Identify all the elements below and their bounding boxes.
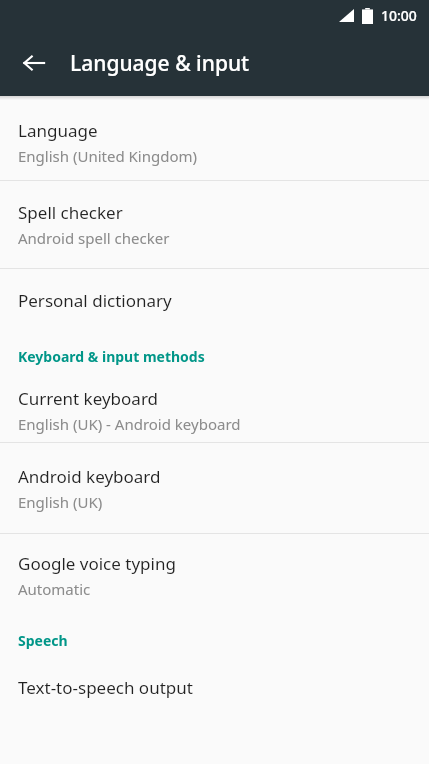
staticText: 10:00 [381,6,417,25]
staticText: Language [18,119,98,142]
button[interactable]: Back [10,39,58,87]
staticText: Text-to-speech output [18,676,193,699]
staticText: Android spell checker [18,228,170,248]
staticText: English (UK) - Android keyboard [18,414,241,434]
button[interactable]: Spell checker [0,181,429,268]
button[interactable]: Google voice typing [0,534,429,617]
staticText: Google voice typing [18,552,176,575]
staticText: Android keyboard [18,465,161,488]
button[interactable]: Personal dictionary [0,269,429,331]
staticText: Language & input [70,49,250,78]
staticText: Current keyboard [18,387,159,410]
staticText: Spell checker [18,201,123,224]
button[interactable]: Language [0,104,429,180]
button[interactable]: Android keyboard [0,443,429,533]
staticText: Automatic [18,579,91,599]
button[interactable]: Text-to-speech output [0,662,429,712]
staticText: Personal dictionary [18,289,172,312]
staticText: English (United Kingdom) [18,146,198,166]
staticText: Keyboard & input methods [18,347,205,366]
staticText: English (UK) [18,492,103,512]
button[interactable]: Current keyboard [0,379,429,442]
staticText: Speech [18,631,68,650]
